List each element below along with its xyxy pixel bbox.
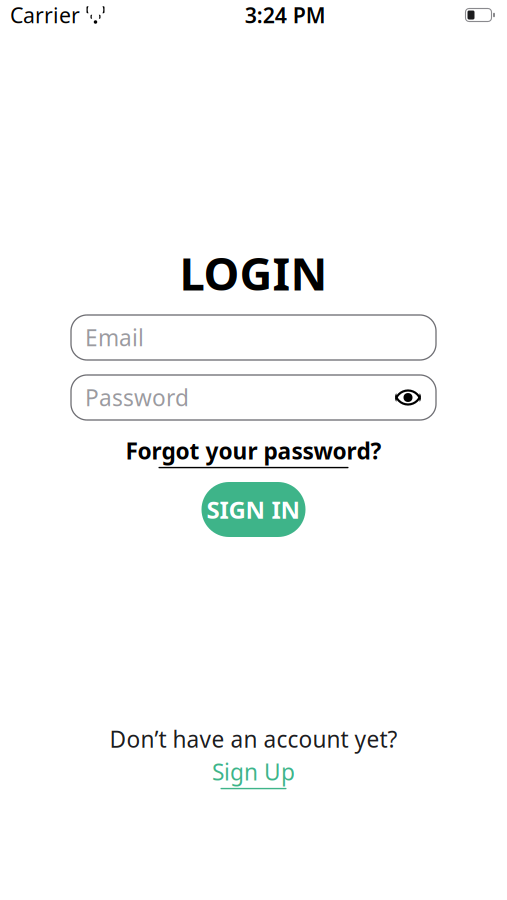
button[interactable]: Forgot your password?: [71, 437, 436, 467]
staticText: Sign Up: [212, 757, 295, 787]
staticText: Password: [85, 382, 189, 412]
staticText: Forgot your password?: [125, 436, 381, 466]
button[interactable]: Show password: [388, 375, 428, 420]
staticText: SIGN IN: [206, 494, 300, 525]
staticText: LOGIN: [179, 243, 327, 303]
button[interactable]: Sign Up: [183, 760, 323, 786]
staticText: Carrier: [10, 1, 80, 29]
button[interactable]: SIGN IN: [201, 482, 305, 537]
staticText: 3:24 PM: [245, 1, 326, 29]
staticText: Don’t have an account yet?: [109, 724, 397, 754]
staticText: Email: [85, 322, 144, 352]
